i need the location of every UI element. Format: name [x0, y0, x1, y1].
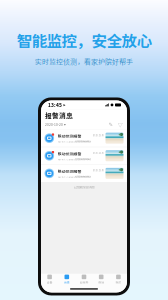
staticText: 10-20 15:30: [92, 168, 103, 172]
button[interactable]: Edit: [107, 122, 113, 128]
button[interactable]: 云服务: [75, 273, 93, 285]
button[interactable]: 商城: [93, 273, 110, 285]
staticText: 已加载全部消息: [73, 185, 94, 190]
staticText: 2020-10-20: [45, 122, 63, 127]
staticText: Pan-Tilt Camera检测到有物体移动: [57, 157, 90, 161]
staticText: 实时监控侦测，看家护院好帮手: [35, 56, 133, 66]
staticText: ✎: [108, 121, 112, 128]
staticText: 报警消息: [45, 110, 73, 120]
staticText: 商城: [98, 280, 104, 284]
button[interactable]: 我的: [110, 273, 127, 285]
button[interactable]: 移动侦测报警: [41, 147, 127, 164]
staticText: 消息: [64, 280, 70, 284]
staticText: 移动侦测报警: [57, 133, 81, 139]
button[interactable]: 移动侦测报警: [41, 130, 127, 147]
button[interactable]: Filter: [117, 122, 123, 128]
staticText: 10-20 15:30: [92, 151, 103, 154]
staticText: 10-20 15:30: [92, 133, 103, 137]
button[interactable]: 设备: [41, 273, 58, 285]
staticText: 13:45: [48, 101, 62, 108]
staticText: 我的: [115, 280, 121, 284]
staticText: 移动侦测报警: [57, 168, 81, 174]
staticText: ➤: [63, 103, 66, 107]
staticText: Pan-Tilt Camera检测到有物体移动: [57, 175, 90, 178]
staticText: 智能监控，安全放心: [16, 29, 151, 51]
staticText: Pan-Tilt Camera检测到有物体移动: [57, 140, 90, 143]
staticText: 设备: [47, 280, 53, 284]
staticText: ▾: [64, 123, 66, 127]
button[interactable]: 移动侦测报警: [41, 165, 127, 182]
button[interactable]: 消息: [58, 273, 75, 285]
staticText: 云服务: [79, 280, 88, 284]
staticText: 移动侦测报警: [57, 151, 81, 157]
staticText: ▽: [117, 121, 122, 128]
